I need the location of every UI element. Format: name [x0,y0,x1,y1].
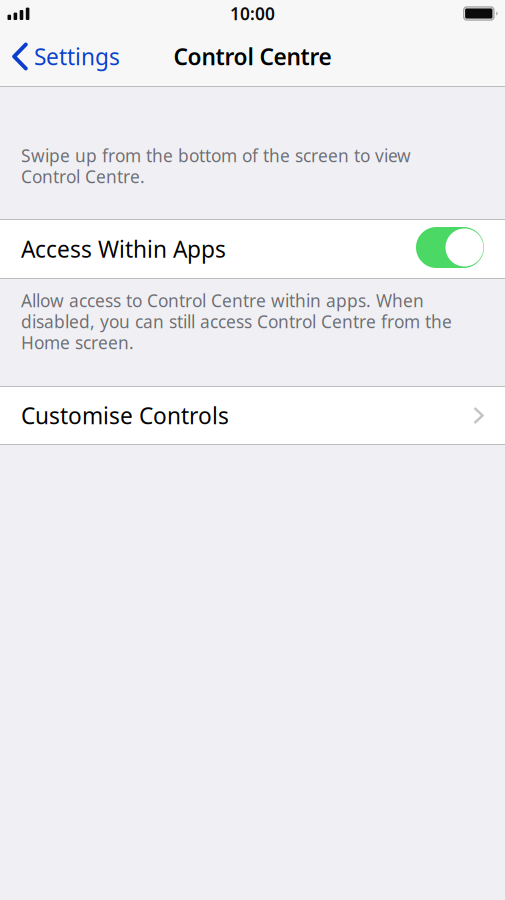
staticText: Control Centre [173,41,331,71]
staticText: Allow access to Control Centre within ap… [21,289,452,354]
staticText: Access Within Apps [21,234,226,264]
button[interactable]: Customise Controls [0,387,505,444]
button[interactable]: Access Within Apps [0,220,505,278]
staticText: 10:00 [230,2,275,25]
button[interactable]: Settings [0,27,140,86]
staticText: Customise Controls [21,400,229,430]
staticText: Swipe up from the bottom of the screen t… [21,144,411,188]
staticText: Settings [34,41,120,71]
